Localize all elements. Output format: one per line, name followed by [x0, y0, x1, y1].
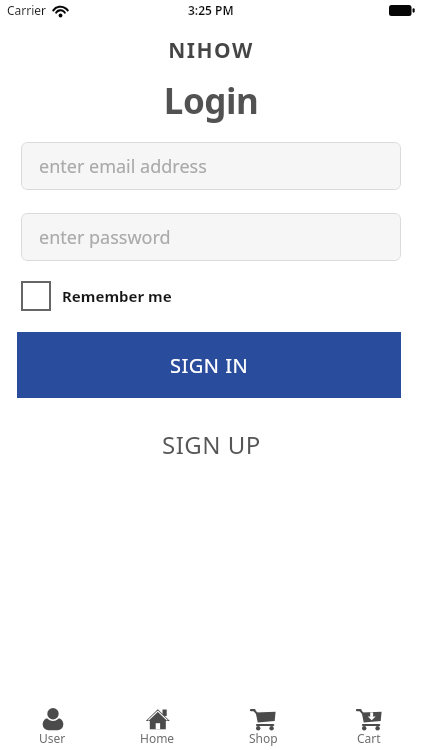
staticText: User	[39, 730, 66, 746]
button[interactable]: SIGN IN	[17, 332, 401, 398]
staticText: Shop	[249, 730, 278, 746]
button[interactable]: Shop	[210, 704, 316, 746]
button[interactable]: Cart	[316, 704, 422, 746]
staticText: Home	[140, 730, 175, 746]
staticText: Carrier	[7, 2, 47, 18]
staticText: 3:25 PM	[188, 2, 234, 18]
staticText: enter password	[39, 225, 171, 250]
staticText: Login	[0, 77, 422, 125]
button[interactable]: Home	[105, 704, 210, 746]
staticText: Cart	[357, 730, 381, 746]
staticText: Remember me	[62, 286, 172, 306]
staticText: enter email address	[39, 154, 207, 179]
button[interactable]: enter password	[21, 213, 401, 261]
button[interactable]: enter email address	[21, 142, 401, 190]
staticText: SIGN UP	[162, 428, 261, 461]
button[interactable]: Remember me	[21, 281, 172, 311]
staticText: NIHOW	[0, 36, 422, 65]
button[interactable]: User	[0, 704, 105, 746]
staticText: SIGN IN	[170, 352, 249, 379]
button[interactable]: SIGN UP	[162, 428, 261, 461]
